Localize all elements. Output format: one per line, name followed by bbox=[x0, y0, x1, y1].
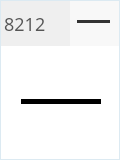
staticText: 8212 bbox=[4, 12, 46, 37]
button[interactable]: 8212 bbox=[1, 1, 70, 46]
